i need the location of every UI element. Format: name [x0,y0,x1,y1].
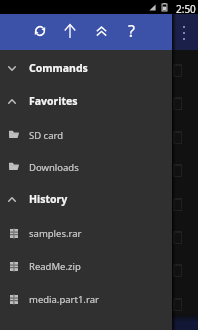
button[interactable]: Go to top [88,18,114,44]
staticText: SD card [29,129,64,142]
staticText: Commands [29,61,88,75]
button[interactable]: Up one level [57,18,83,44]
staticText: Favorites [29,94,78,108]
staticText: media.part1.rar [29,293,99,306]
button[interactable]: Refresh [27,18,53,44]
button[interactable]: ReadMe.zip [0,247,172,280]
button[interactable]: ? [118,18,144,44]
button[interactable]: SD card [0,116,172,149]
staticText: Downloads [29,161,79,174]
staticText: History [29,192,68,206]
button[interactable]: samples.rar [0,214,172,247]
staticText: ? [128,20,135,42]
button[interactable]: media.part1.rar [0,280,172,313]
button[interactable]: History [0,181,172,214]
button[interactable]: Favorites [0,83,172,116]
staticText: 2:50 [176,2,196,16]
button[interactable]: More options [177,23,190,43]
button[interactable]: Downloads [0,148,172,181]
button[interactable]: Commands [0,50,172,83]
staticText: samples.rar [29,227,82,240]
staticText: ReadMe.zip [29,260,81,273]
